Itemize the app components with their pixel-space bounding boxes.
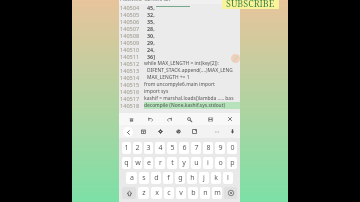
button[interactable]: 5 [167, 142, 177, 154]
button[interactable]: 8 [203, 142, 213, 154]
button[interactable]: Open [125, 113, 137, 125]
staticText: 140510 [120, 46, 144, 53]
staticText: 140514 [120, 74, 144, 81]
button[interactable]: q [122, 157, 131, 169]
button[interactable]: u [191, 157, 201, 169]
staticText: h [190, 173, 195, 183]
staticText: k [214, 173, 218, 183]
staticText: u [194, 158, 199, 168]
button[interactable]: s [139, 172, 149, 184]
button[interactable]: c [164, 187, 174, 199]
staticText: 0 [230, 143, 235, 153]
staticText: g [178, 173, 183, 183]
staticText: kashif = marshal.loads()lambda ..... bas [144, 95, 234, 102]
button[interactable]: m [212, 187, 222, 199]
button[interactable]: j [199, 172, 209, 184]
staticText: f [167, 173, 170, 183]
staticText: d [154, 173, 159, 183]
staticText: x [155, 188, 159, 198]
staticText: b [191, 188, 196, 198]
button[interactable]: z [138, 187, 149, 199]
button[interactable]: Theme [172, 125, 184, 138]
button[interactable]: Settings [154, 125, 166, 138]
staticText: y [182, 158, 186, 168]
staticText: j [203, 173, 205, 183]
staticText: q [124, 158, 129, 168]
button[interactable]: Search [183, 113, 195, 125]
button[interactable]: Redo [163, 113, 175, 125]
button[interactable]: w [133, 157, 142, 169]
staticText: n [203, 188, 208, 198]
staticText: o [218, 158, 223, 168]
button[interactable]: 6 [179, 142, 189, 154]
button[interactable]: a [126, 172, 137, 184]
button[interactable]: n [200, 187, 210, 199]
button[interactable]: t [167, 157, 177, 169]
button[interactable]: SUBSCRIBE [222, 0, 279, 9]
staticText: import sys [144, 88, 169, 95]
button[interactable]: Save [204, 113, 216, 125]
staticText: 8 [206, 143, 211, 153]
staticText: from uncompyle6.main import decompile [144, 81, 240, 88]
button[interactable]: 4 [155, 142, 165, 154]
button[interactable]: p [227, 157, 237, 169]
button[interactable]: e [144, 157, 153, 169]
button[interactable]: Backspace [224, 187, 237, 199]
staticText: z [142, 188, 146, 198]
button[interactable]: h [187, 172, 197, 184]
staticText: decompile (None,kashif,sys.stdout) [144, 102, 226, 109]
button[interactable]: 3 [144, 142, 153, 154]
button[interactable]: d [151, 172, 161, 184]
button[interactable]: x [151, 187, 162, 199]
staticText: r [159, 158, 162, 168]
button[interactable]: f [163, 172, 173, 184]
staticText: 140507 [120, 25, 144, 32]
button[interactable]: l [223, 172, 233, 184]
staticText: MAX_LENGTH += 1 [147, 74, 190, 81]
staticText: 4 [158, 143, 163, 153]
staticText: w [135, 158, 141, 168]
staticText: 140511 [120, 53, 144, 60]
button[interactable]: 1 [122, 142, 131, 154]
staticText: a [130, 173, 134, 183]
button[interactable]: 2 [133, 142, 142, 154]
staticText: s [142, 173, 146, 183]
staticText: 35, [147, 18, 155, 25]
button[interactable]: b [188, 187, 198, 199]
staticText: 140517 [120, 95, 144, 102]
staticText: 140515 [120, 81, 144, 88]
button[interactable]: v [176, 187, 186, 199]
button[interactable]: k [211, 172, 221, 184]
staticText: 140505 [120, 11, 144, 18]
staticText: v [179, 188, 183, 198]
staticText: 3 [146, 143, 151, 153]
button[interactable]: i [203, 157, 213, 169]
button[interactable]: Close [224, 113, 236, 125]
button[interactable]: r [155, 157, 165, 169]
button[interactable]: Open in new [188, 125, 200, 138]
staticText: 6 [182, 143, 187, 153]
button[interactable]: 7 [191, 142, 201, 154]
button[interactable]: g [175, 172, 185, 184]
staticText: i [207, 158, 209, 168]
staticText: 140518 [120, 102, 144, 109]
button[interactable]: Untitled-31 [120, 0, 151, 1]
button[interactable]: Shift [122, 187, 136, 199]
staticText: 140508 [120, 32, 144, 39]
button[interactable]: More [211, 125, 223, 138]
button[interactable]: Documents [137, 125, 149, 138]
button[interactable]: 404x3.py [146, 0, 171, 1]
button[interactable]: 0 [227, 142, 237, 154]
staticText: c [167, 188, 171, 198]
button[interactable]: Back [123, 127, 133, 137]
staticText: 7 [194, 143, 199, 153]
button[interactable]: o [215, 157, 225, 169]
button[interactable]: Download [226, 125, 238, 138]
staticText: 140506 [120, 18, 144, 25]
button[interactable]: Undo [144, 113, 156, 125]
staticText: 30, [147, 32, 155, 39]
staticText: e [147, 158, 151, 168]
staticText: 140509 [120, 39, 144, 46]
button[interactable]: 9 [215, 142, 225, 154]
button[interactable]: y [179, 157, 189, 169]
